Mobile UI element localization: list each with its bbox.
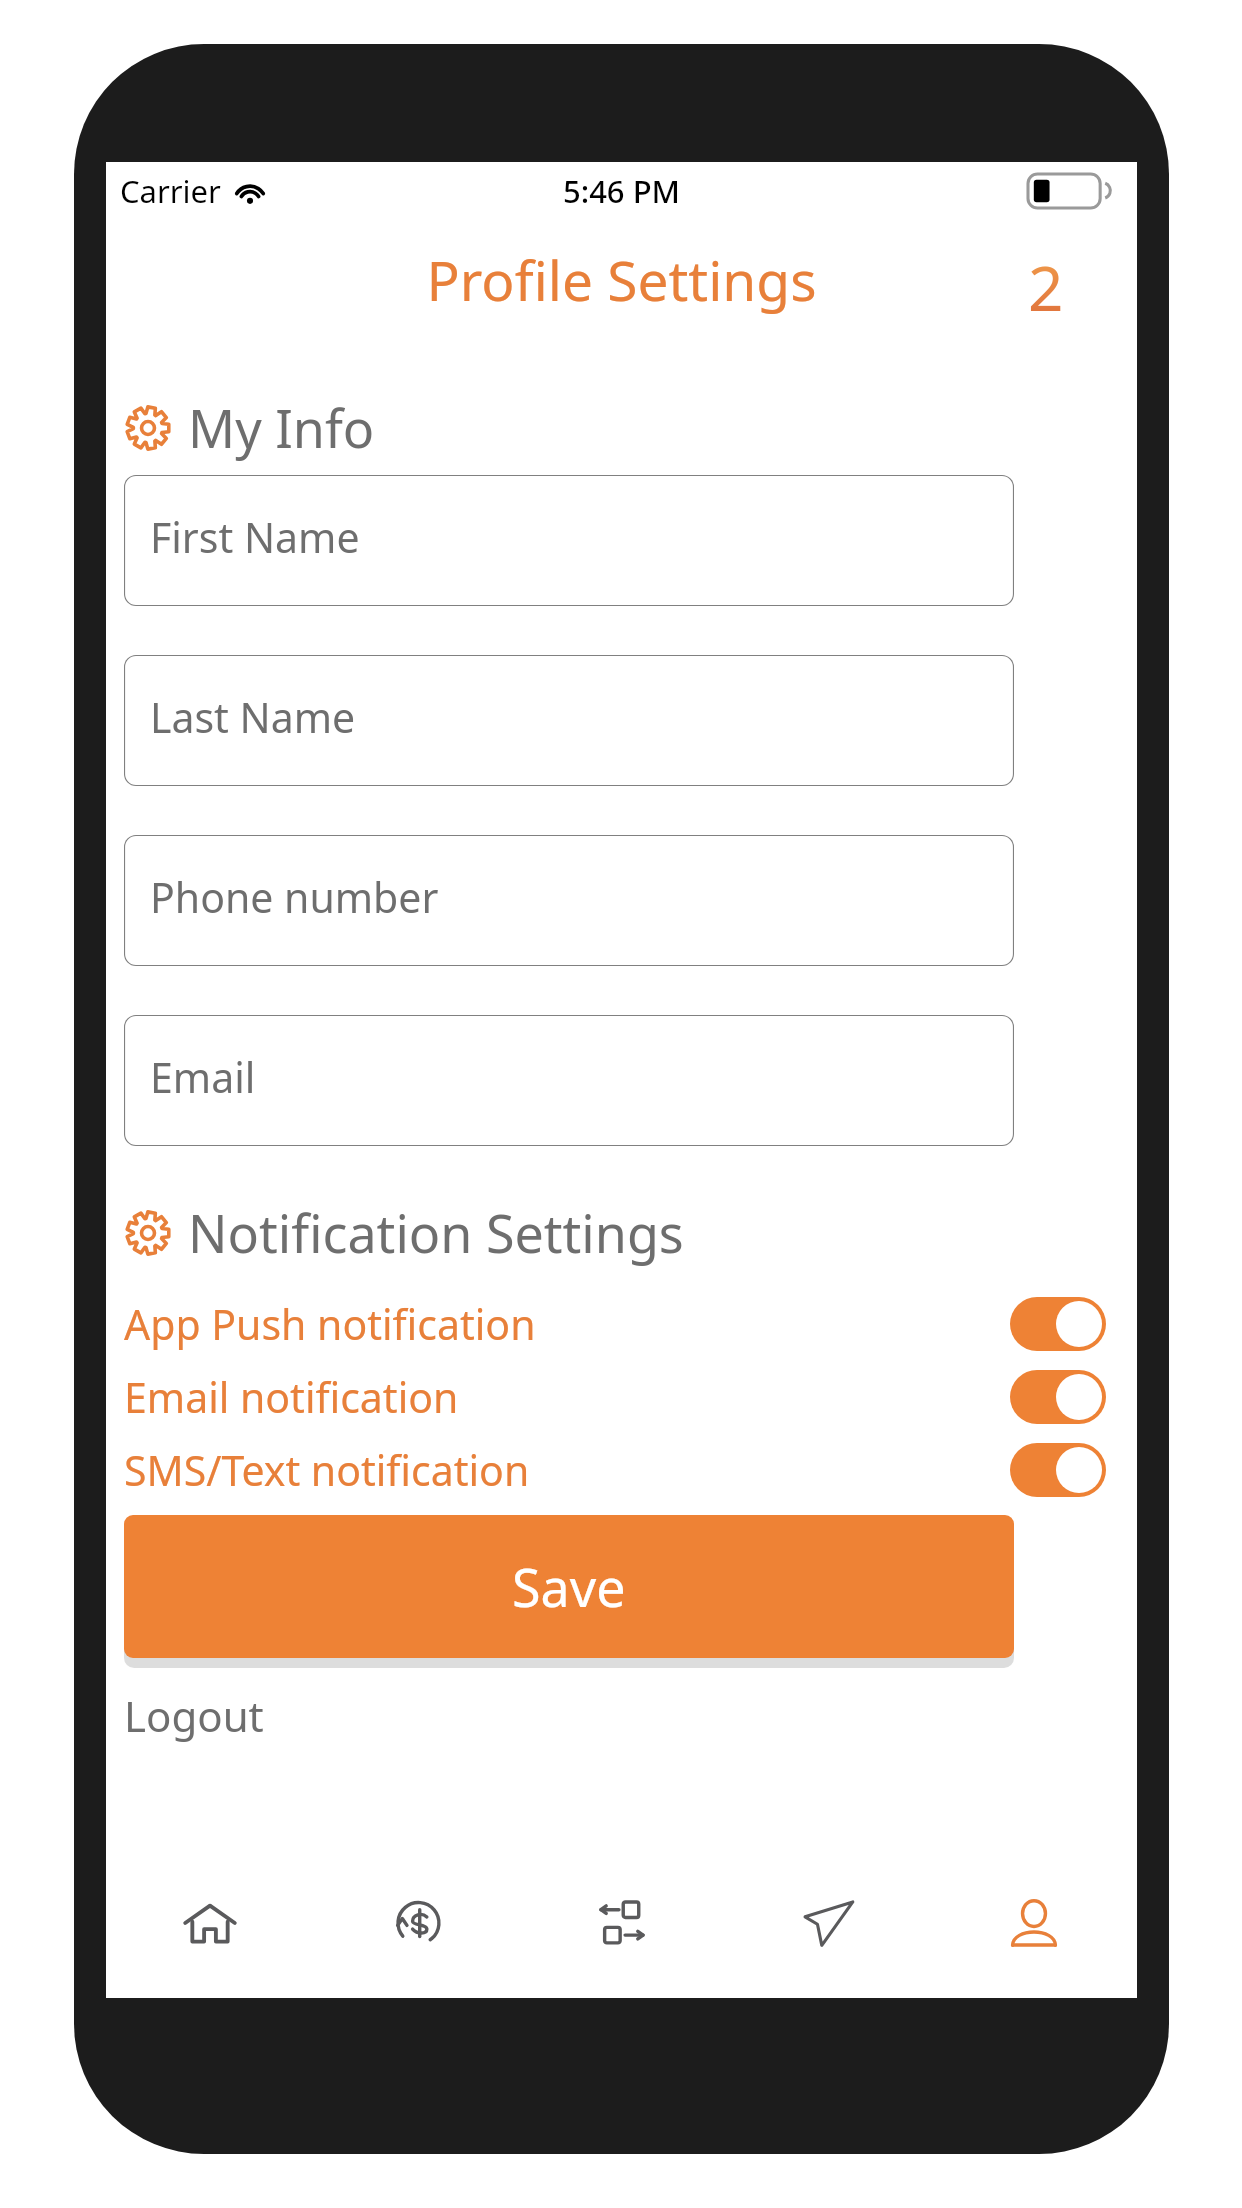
staticText: Save [512,1551,626,1622]
button[interactable]: Last Name [124,655,1014,786]
button[interactable]: First Name [124,475,1014,606]
staticText: Notification Settings [188,1197,684,1268]
staticText: My Info [188,392,375,463]
button[interactable]: Logout [124,1680,264,1750]
button[interactable]: Transfer [519,1848,725,1998]
button[interactable]: Email [124,1015,1014,1146]
staticText: App Push notification [124,1296,536,1352]
button[interactable]: SMS/Text notification [106,1433,1137,1506]
button[interactable]: Save [124,1515,1014,1658]
staticText: Carrier [120,170,221,212]
staticText: Logout [124,1687,264,1744]
button[interactable]: Home [106,1848,313,1998]
staticText: First Name [150,509,360,565]
button[interactable]: Phone number [124,835,1014,966]
staticText: Profile Settings [106,242,1137,317]
staticText: Last Name [150,689,356,745]
staticText: Email [150,1049,256,1105]
button[interactable]: App Push notification [106,1287,1137,1360]
button[interactable]: Profile [931,1848,1137,1998]
button[interactable]: Transactions [313,1848,519,1998]
button[interactable]: Email notification [106,1360,1137,1433]
staticText: 5:46 PM [106,170,1137,212]
button[interactable]: Notifications [986,232,1106,342]
staticText: SMS/Text notification [124,1442,530,1498]
button[interactable]: Send [725,1848,931,1998]
staticText: Email notification [124,1369,459,1425]
staticText: Phone number [150,869,439,925]
staticText: 2 [1028,245,1064,329]
